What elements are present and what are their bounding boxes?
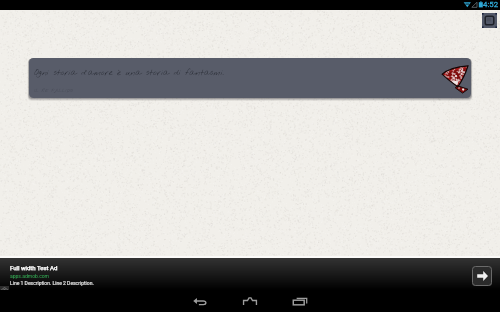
staticText: Ogni storia d'amore è una storia di fant… xyxy=(34,67,224,79)
button[interactable]: Full width Test Ad xyxy=(0,258,500,290)
button[interactable]: Home xyxy=(228,290,272,312)
button[interactable]: Back xyxy=(178,290,222,312)
button[interactable]: Recent apps xyxy=(278,290,322,312)
button[interactable]: Options xyxy=(482,13,497,28)
staticText: Full width Test Ad xyxy=(10,264,58,271)
button[interactable]: Ad choices xyxy=(0,286,9,294)
button[interactable]: Go xyxy=(472,266,492,286)
staticText: Line 1 Description. Line 2 Description. xyxy=(10,280,94,286)
staticText: apps.admob.com xyxy=(10,273,49,279)
button[interactable]: Ogni storia d'amore è una storia di fant… xyxy=(29,58,471,98)
staticText: 4:52 xyxy=(483,0,499,9)
